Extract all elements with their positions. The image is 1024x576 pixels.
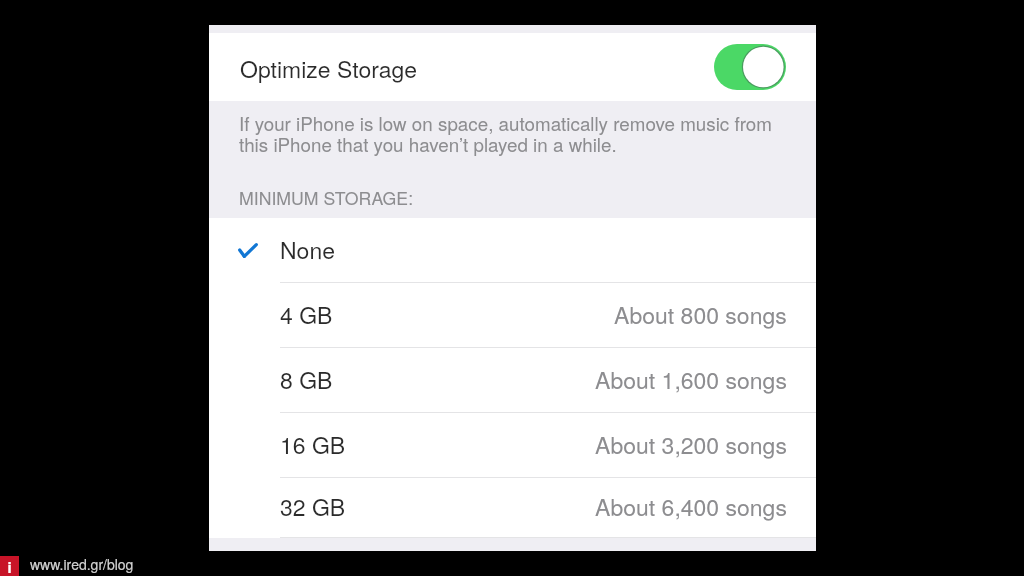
staticText: i [7, 556, 12, 576]
button[interactable]: 4 GB [209, 283, 816, 347]
button[interactable]: ired.gr logo [0, 556, 19, 576]
staticText: 32 GB [280, 490, 346, 523]
button[interactable]: 16 GB [209, 413, 816, 477]
staticText: If your iPhone is low on space, automati… [239, 109, 772, 157]
staticText: About 3,200 songs [595, 428, 787, 461]
staticText: About 6,400 songs [595, 490, 787, 523]
staticText: Optimize Storage [240, 52, 418, 85]
button[interactable]: Optimize Storage [209, 33, 816, 101]
button[interactable]: 32 GB [209, 478, 816, 537]
staticText: 8 GB [280, 363, 333, 396]
button[interactable]: Optimize Storage, on [714, 44, 786, 90]
button[interactable]: None [209, 218, 816, 282]
button[interactable]: 8 GB [209, 348, 816, 412]
staticText: 16 GB [280, 428, 346, 461]
staticText: About 800 songs [614, 298, 787, 331]
staticText: About 1,600 songs [595, 363, 787, 396]
staticText: www.ired.gr/blog [30, 554, 134, 574]
staticText: MINIMUM STORAGE: [239, 185, 414, 210]
staticText: 4 GB [280, 298, 333, 331]
staticText: None [280, 233, 335, 266]
